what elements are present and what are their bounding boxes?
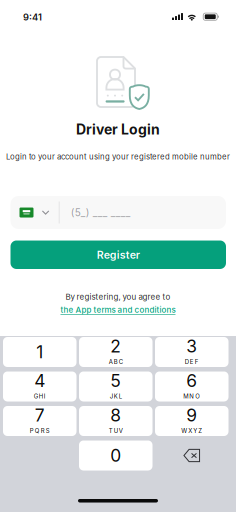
button[interactable]: 8: [79, 406, 152, 436]
staticText: 3: [186, 336, 197, 357]
staticText: 8: [110, 405, 121, 426]
button[interactable]: Select country code: [10, 196, 59, 229]
staticText: 6: [186, 370, 197, 391]
staticText: Login to your account using your registe…: [6, 152, 230, 161]
staticText: T U V: [109, 427, 123, 434]
staticText: A B C: [109, 358, 123, 365]
staticText: 1: [36, 341, 43, 362]
button[interactable]: 3: [155, 337, 228, 367]
button[interactable]: 4: [3, 371, 76, 401]
staticText: 7: [35, 405, 45, 426]
button[interactable]: the App terms and conditions: [60, 305, 175, 315]
button[interactable]: Register: [10, 240, 226, 269]
button[interactable]: Delete: [155, 440, 228, 470]
staticText: W X Y Z: [181, 427, 202, 434]
staticText: the App terms and conditions: [60, 305, 175, 315]
staticText: J K L: [110, 393, 122, 400]
staticText: P Q R S: [30, 427, 50, 434]
staticText: Driver Login: [76, 121, 160, 138]
button[interactable]: 0: [79, 440, 152, 470]
button[interactable]: 2: [79, 337, 152, 367]
staticText: 9:41: [23, 11, 42, 23]
staticText: 0: [110, 445, 121, 466]
staticText: (5_) ___ ____: [71, 206, 131, 219]
staticText: 9: [186, 405, 197, 426]
button[interactable]: 7: [3, 406, 76, 436]
staticText: M N O: [183, 393, 200, 400]
button[interactable]: 5: [79, 371, 152, 401]
button[interactable]: 1: [3, 337, 76, 367]
staticText: G H I: [34, 393, 46, 400]
button[interactable]: 6: [155, 371, 228, 401]
staticText: 4: [34, 370, 45, 391]
staticText: Register: [97, 248, 140, 261]
button[interactable]: 9: [155, 406, 228, 436]
staticText: D E F: [185, 358, 199, 365]
staticText: By registering, you agree to: [65, 292, 170, 302]
staticText: 5: [110, 370, 121, 391]
staticText: 2: [110, 336, 121, 357]
